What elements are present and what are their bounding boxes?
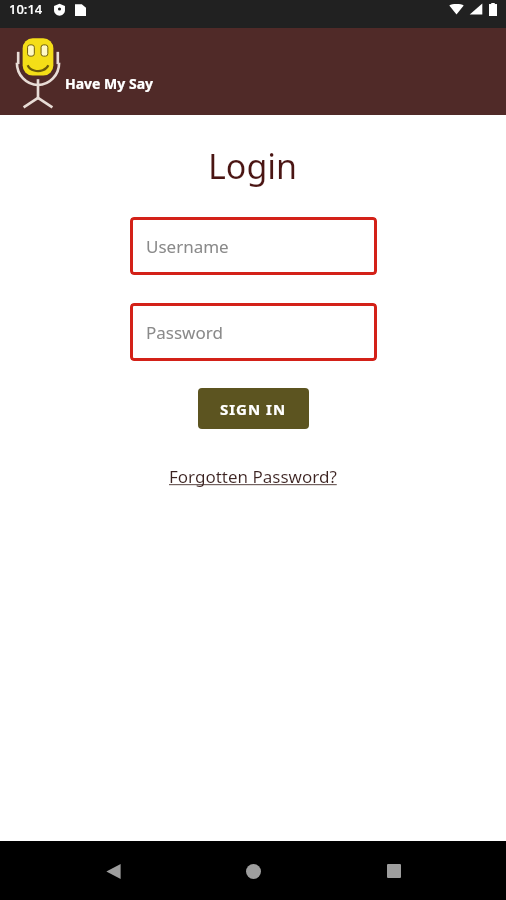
- staticText: Login: [208, 143, 298, 189]
- staticText: 10:14: [9, 0, 43, 18]
- button[interactable]: Password: [130, 303, 377, 361]
- button[interactable]: Username: [130, 217, 377, 275]
- button[interactable]: Forgotten Password?: [163, 461, 343, 492]
- button[interactable]: Back: [85, 843, 141, 899]
- staticText: SIGN IN: [220, 399, 287, 419]
- button[interactable]: Recent apps: [366, 843, 422, 899]
- button[interactable]: Home: [225, 843, 281, 899]
- staticText: Forgotten Password?: [169, 465, 337, 488]
- button[interactable]: SIGN IN: [198, 388, 309, 429]
- staticText: Have My Say: [65, 74, 154, 93]
- staticText: Password: [146, 321, 223, 344]
- staticText: Username: [146, 235, 229, 258]
